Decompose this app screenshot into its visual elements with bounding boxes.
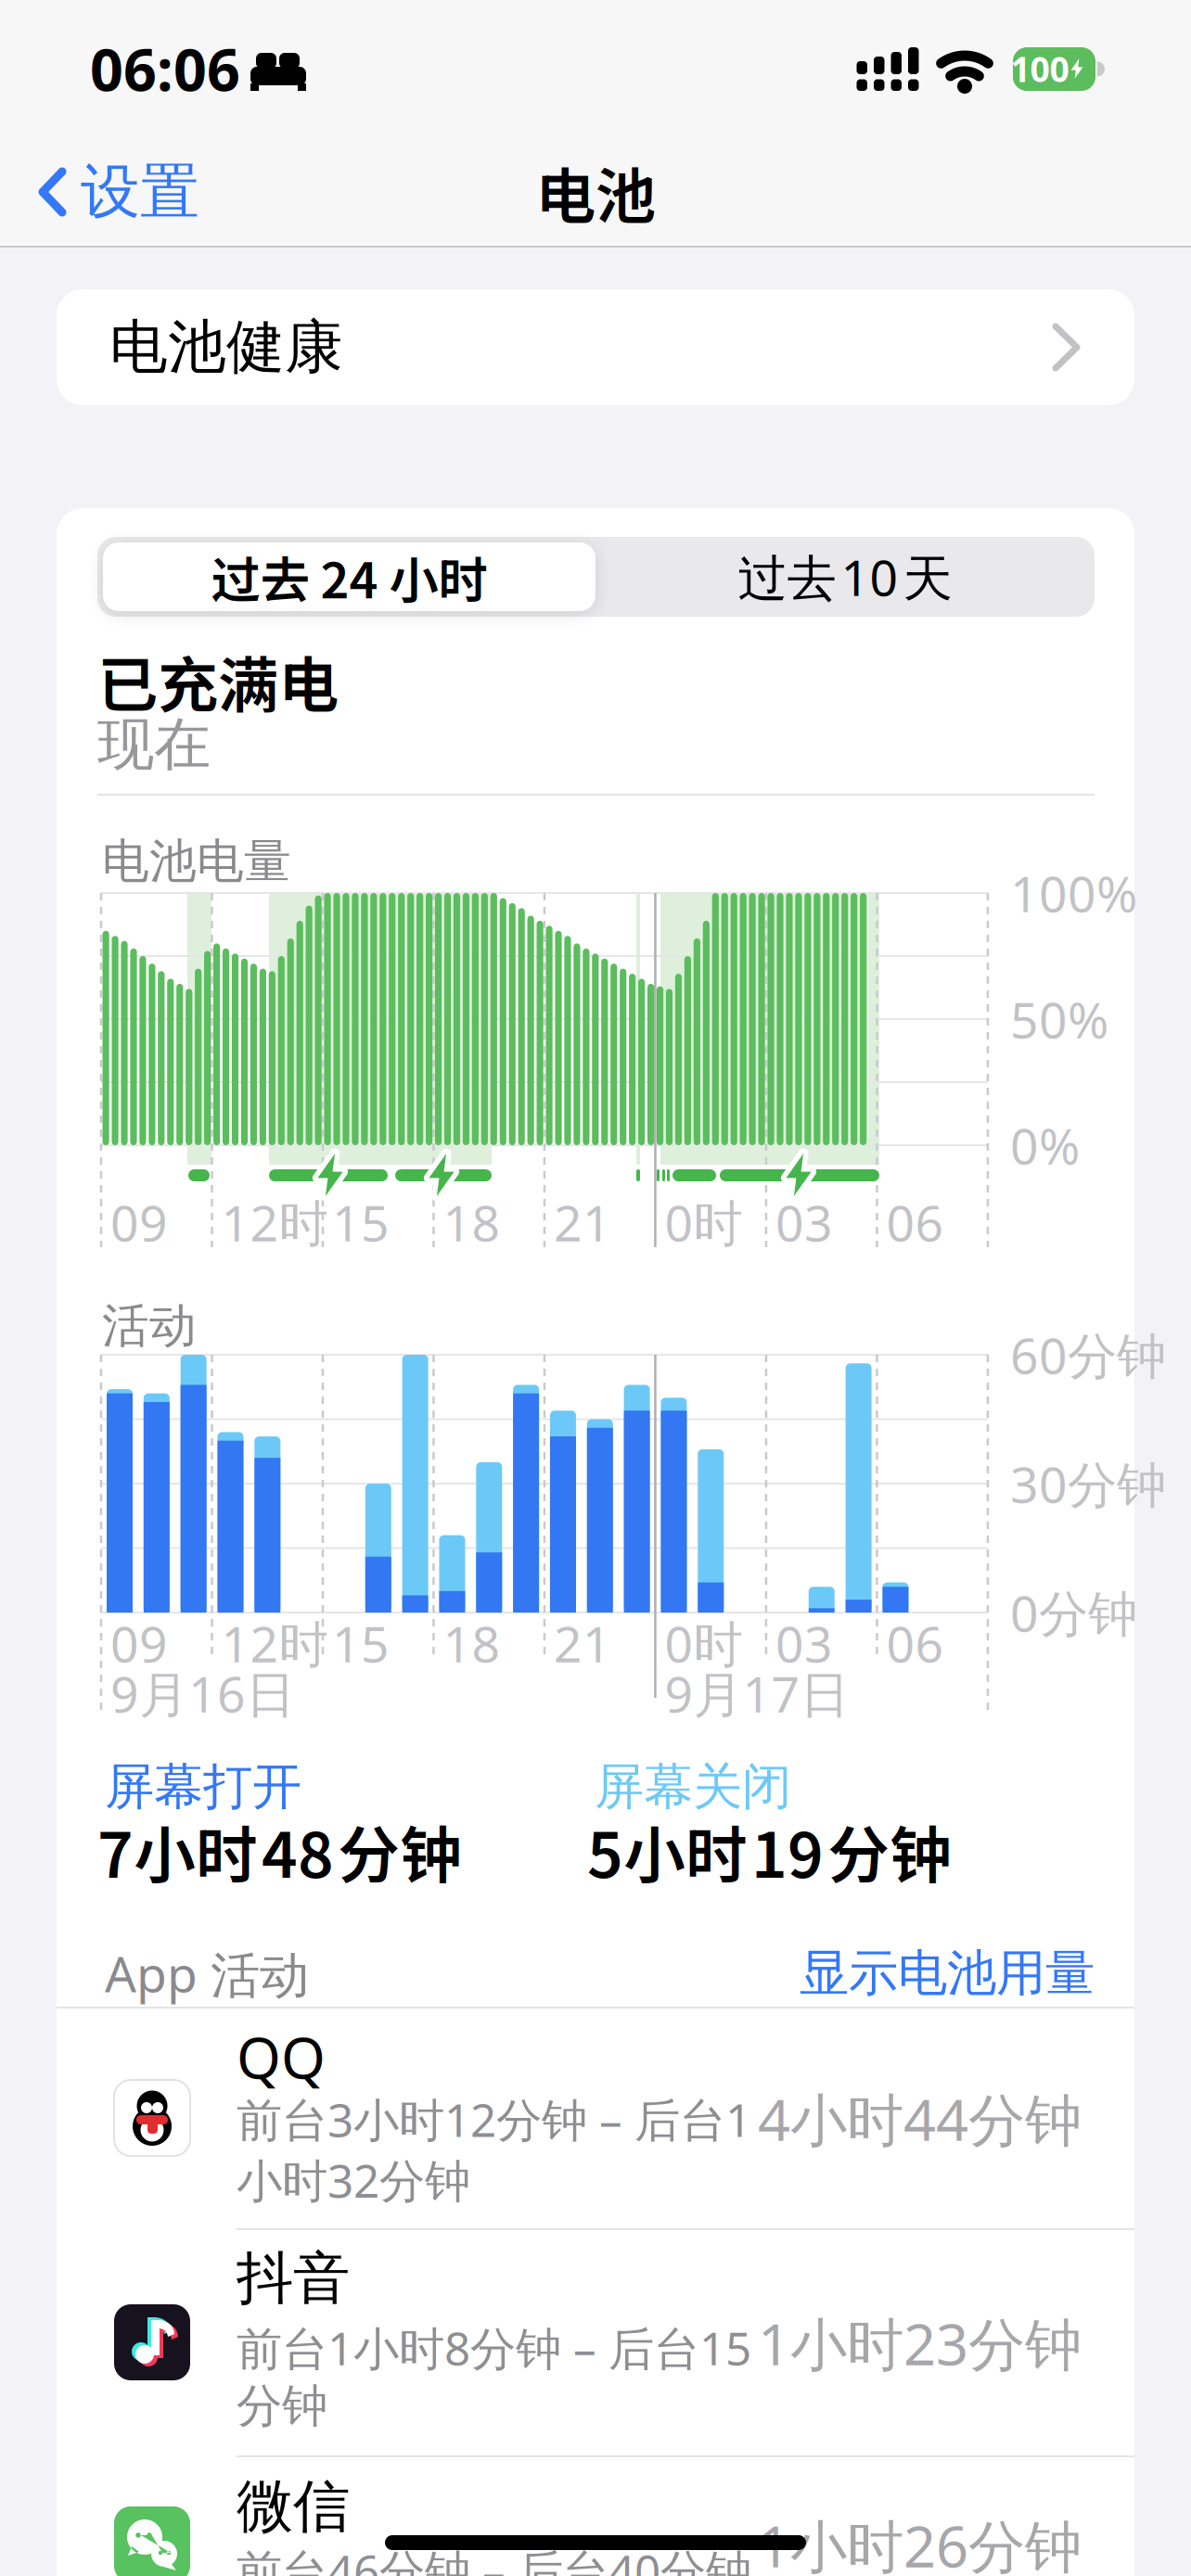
staticText: 显示电池用量 <box>800 1943 1095 2004</box>
button[interactable]: 过去 10 天 <box>599 542 1091 611</box>
staticText: 1小时26分钟 <box>758 2508 1082 2576</box>
staticText: 18 <box>443 1189 500 1255</box>
staticText: 屏幕关闭 <box>595 1756 791 1817</box>
staticText: 已充满电 <box>97 637 339 724</box>
staticText: 活动 <box>102 1297 197 1355</box>
staticText: 0分钟 <box>1010 1580 1137 1645</box>
staticText: 06 <box>886 1610 944 1676</box>
staticText: 1小时23分钟 <box>758 2306 1082 2381</box>
staticText: 15 <box>332 1610 390 1676</box>
staticText: 9月16日 <box>110 1660 295 1726</box>
staticText: 抖音 <box>237 2243 350 2313</box>
button[interactable]: 电池健康 <box>57 289 1134 405</box>
staticText: 9月17日 <box>665 1660 849 1726</box>
staticText: 06:06 <box>90 30 240 107</box>
staticText: 12时 <box>221 1610 328 1676</box>
button[interactable]: 显示电池用量 <box>724 1943 1095 2004</box>
staticText: 现在 <box>97 710 211 779</box>
staticText: 0时 <box>665 1189 742 1255</box>
staticText: 过去 24 小时 <box>211 541 487 613</box>
button[interactable]: 过去 24 小时 <box>103 542 595 611</box>
staticText: QQ <box>237 2019 326 2094</box>
staticText: 06 <box>886 1189 944 1255</box>
staticText: 09 <box>110 1610 168 1676</box>
staticText: 前台1小时8分钟 – 后台15 分钟 <box>237 2317 751 2434</box>
button[interactable]: 抖音 <box>57 2230 1134 2456</box>
staticText: 18 <box>443 1610 500 1676</box>
staticText: 过去 10 天 <box>738 544 952 610</box>
staticText: 4小时44分钟 <box>758 2081 1082 2157</box>
staticText: 21 <box>554 1610 611 1676</box>
staticText: 100 <box>1011 46 1069 92</box>
staticText: 设置 <box>81 156 199 228</box>
staticText: 电池 <box>535 148 656 236</box>
staticText: 50% <box>1010 986 1108 1052</box>
staticText: 03 <box>775 1610 833 1676</box>
staticText: 0时 <box>665 1610 742 1676</box>
button[interactable]: 微信 <box>57 2457 1134 2576</box>
staticText: 0% <box>1010 1112 1080 1178</box>
staticText: 09 <box>110 1189 168 1255</box>
button[interactable]: 返回设置 <box>38 159 261 224</box>
staticText: 微信 <box>237 2471 350 2541</box>
staticText: App 活动 <box>105 1940 309 2006</box>
staticText: 屏幕打开 <box>105 1756 301 1817</box>
staticText: 60分钟 <box>1010 1322 1166 1388</box>
staticText: 电池电量 <box>102 833 291 890</box>
staticText: 15 <box>332 1189 390 1255</box>
staticText: 前台3小时12分钟 – 后台1 小时32分钟 <box>237 2089 751 2210</box>
staticText: 12时 <box>221 1189 328 1255</box>
staticText: 30分钟 <box>1010 1451 1166 1516</box>
staticText: 21 <box>554 1189 611 1255</box>
staticText: 03 <box>775 1189 833 1255</box>
staticText: 5小时 19 分钟 <box>587 1806 952 1896</box>
button[interactable]: QQ <box>57 2009 1134 2229</box>
staticText: 前台46分钟 – 后台40分钟 <box>237 2540 751 2576</box>
staticText: 100% <box>1010 860 1137 926</box>
staticText: 7小时 48 分钟 <box>97 1806 462 1896</box>
staticText: 电池健康 <box>109 312 343 383</box>
